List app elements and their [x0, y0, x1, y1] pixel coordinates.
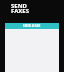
button[interactable]: SEND A FAX	[5, 23, 59, 29]
staticText: SEND A FAX	[23, 24, 41, 28]
staticText: SEND FAXES	[11, 2, 30, 15]
